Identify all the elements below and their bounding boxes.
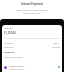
staticText: Send money to anyone instantly with no e…: [16, 9, 48, 15]
staticText: Total pay: [4, 27, 13, 30]
staticText: Standard Payment: [4, 56, 23, 59]
staticText: $1,250.00: [4, 31, 16, 35]
staticText: Arrives in seconds: [9, 68, 25, 70]
staticText: Instant Payment: [21, 2, 43, 6]
button[interactable]: Instant transfer: [4, 64, 60, 70]
staticText: Recipient: [4, 42, 14, 45]
staticText: INV-204: [52, 46, 60, 49]
staticText: Alex S.: [53, 42, 60, 45]
staticText: Instant transfer: [9, 65, 24, 68]
staticText: Payment: [4, 51, 15, 54]
staticText: Reference: [4, 46, 14, 49]
